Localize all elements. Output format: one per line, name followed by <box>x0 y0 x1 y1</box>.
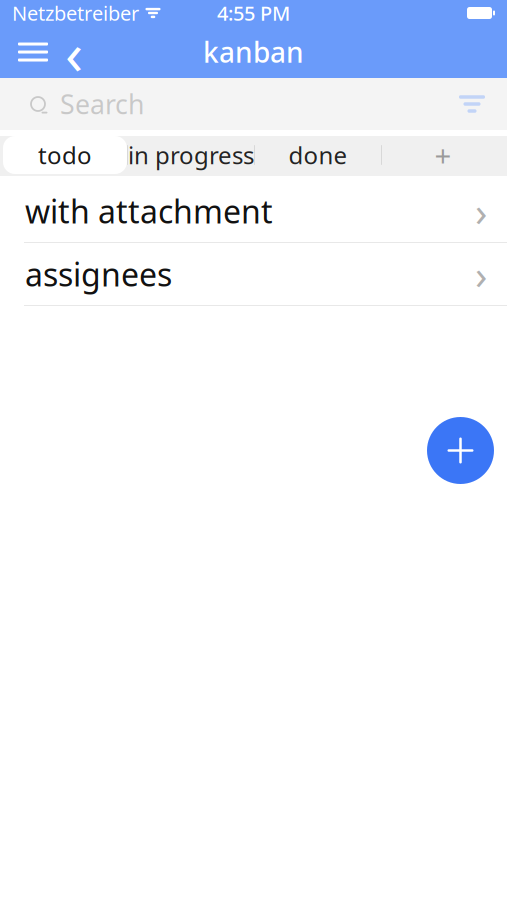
staticText: kanban <box>203 33 304 71</box>
staticText: › <box>475 247 487 300</box>
button[interactable]: Back <box>58 32 90 72</box>
button[interactable]: Filter <box>445 79 499 129</box>
button[interactable]: Menu <box>14 32 52 72</box>
staticText: › <box>475 184 487 237</box>
button[interactable]: in progress <box>128 136 254 174</box>
staticText: in progress <box>128 139 254 171</box>
staticText: 4:55 PM <box>217 0 290 26</box>
staticText: assignees <box>25 253 172 295</box>
button[interactable]: done <box>255 136 381 174</box>
staticText: Netzbetreiber <box>12 0 139 26</box>
staticText: Search <box>60 86 144 122</box>
staticText: + <box>434 135 451 174</box>
button[interactable]: Add column <box>382 136 504 174</box>
staticText: with attachment <box>25 190 273 232</box>
button[interactable]: assignees <box>0 243 507 305</box>
staticText: done <box>288 139 347 171</box>
staticText: ‹ <box>65 13 83 91</box>
button[interactable]: Add task <box>427 417 494 484</box>
button[interactable]: with attachment <box>0 180 507 242</box>
staticText: todo <box>38 139 92 171</box>
button[interactable]: todo <box>3 136 127 174</box>
